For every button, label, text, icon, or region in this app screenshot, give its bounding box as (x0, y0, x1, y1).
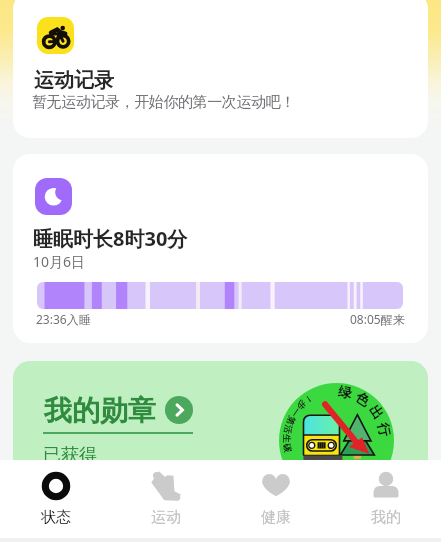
button[interactable]: 我的 (331, 460, 441, 538)
button[interactable]: 我的勋章 (13, 361, 428, 491)
button[interactable]: 查看我的勋章 (165, 396, 193, 424)
staticText: 10月6日 (33, 252, 86, 271)
button[interactable]: 睡眠时长8时30分 (13, 154, 428, 343)
staticText: 状态 (41, 508, 71, 527)
button[interactable]: 健康 (221, 460, 331, 538)
button[interactable]: 状态 (0, 460, 111, 538)
staticText: 运动 (151, 508, 181, 527)
staticText: 已获得 (43, 444, 97, 467)
staticText: 暂无运动记录，开始你的第一次运动吧！ (32, 93, 295, 112)
staticText: 运动记录 (34, 68, 114, 93)
staticText: 我的勋章 (44, 393, 156, 428)
staticText: 睡眠时长8时30分 (33, 225, 188, 252)
staticText: 23:36入睡 (36, 311, 91, 327)
button[interactable]: 运动记录 (13, 0, 428, 138)
staticText: 08:05醒来 (350, 311, 405, 327)
staticText: 我的 (371, 508, 401, 527)
button[interactable]: 运动 (111, 460, 221, 538)
staticText: 健康 (261, 508, 291, 527)
